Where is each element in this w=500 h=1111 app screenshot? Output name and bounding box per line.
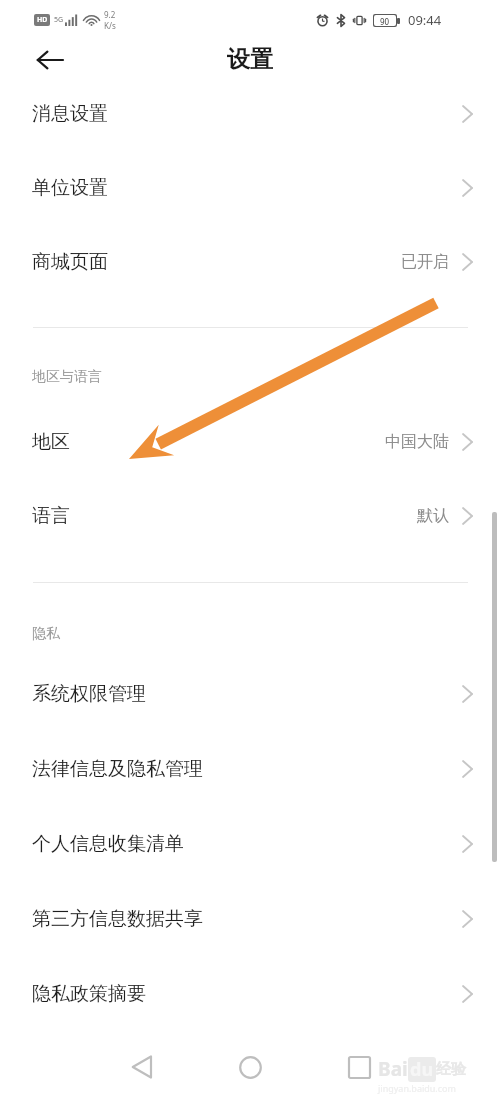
- button[interactable]: 商城页面: [0, 225, 500, 299]
- button[interactable]: 最近任务: [331, 1039, 387, 1095]
- staticText: 90: [380, 16, 390, 25]
- button[interactable]: 返回: [113, 1039, 169, 1095]
- button[interactable]: 语言: [0, 479, 500, 553]
- button[interactable]: 主页: [222, 1039, 278, 1095]
- staticText: 系统权限管理: [32, 682, 146, 706]
- staticText: 09:44: [408, 11, 442, 29]
- staticText: Bai: [378, 1056, 408, 1082]
- button[interactable]: 单位设置: [0, 151, 500, 225]
- button[interactable]: 第三方信息数据共享: [0, 882, 500, 956]
- staticText: K/s: [104, 20, 116, 31]
- staticText: 地区与语言: [32, 368, 102, 386]
- staticText: 个人信息收集清单: [32, 832, 184, 856]
- staticText: 商城页面: [32, 250, 108, 274]
- staticText: 第三方信息数据共享: [32, 907, 203, 931]
- staticText: 消息设置: [32, 102, 108, 126]
- staticText: 已开启: [401, 252, 449, 272]
- staticText: 9.2: [104, 9, 116, 20]
- staticText: 默认: [417, 506, 449, 526]
- button[interactable]: 个人信息收集清单: [0, 807, 500, 881]
- staticText: HD: [37, 15, 48, 25]
- staticText: du: [410, 1057, 434, 1082]
- staticText: 法律信息及隐私管理: [32, 757, 203, 781]
- staticText: 单位设置: [32, 176, 108, 200]
- staticText: 经验: [436, 1060, 466, 1079]
- button[interactable]: 系统权限管理: [0, 657, 500, 731]
- button[interactable]: 地区: [0, 405, 500, 479]
- staticText: 中国大陆: [385, 432, 449, 452]
- staticText: 隐私: [32, 625, 60, 643]
- button[interactable]: 隐私政策摘要: [0, 957, 500, 1031]
- staticText: 设置: [227, 45, 273, 74]
- button[interactable]: 法律信息及隐私管理: [0, 732, 500, 806]
- button[interactable]: 返回: [22, 32, 78, 88]
- staticText: 语言: [32, 504, 70, 528]
- staticText: 地区: [32, 430, 70, 454]
- button[interactable]: 消息设置: [0, 77, 500, 151]
- staticText: jingyan.baidu.com: [378, 1082, 456, 1094]
- staticText: 5G: [54, 15, 64, 25]
- staticText: 隐私政策摘要: [32, 982, 146, 1006]
